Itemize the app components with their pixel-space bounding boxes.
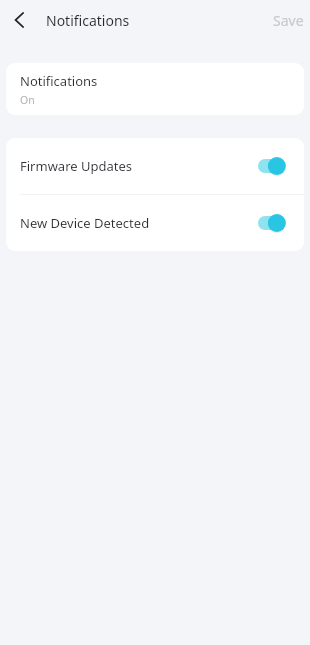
staticText: Notifications — [20, 72, 98, 90]
staticText: On — [20, 93, 35, 107]
button[interactable]: Toggle on — [258, 214, 284, 232]
button[interactable]: Notifications — [6, 63, 304, 115]
staticText: Firmware Updates — [20, 157, 132, 175]
button[interactable]: New Device Detected — [6, 195, 304, 251]
staticText: Notifications — [46, 11, 130, 30]
button[interactable]: Toggle on — [258, 157, 284, 175]
staticText: Save — [273, 11, 304, 30]
button[interactable]: Save — [267, 5, 310, 36]
button[interactable]: Firmware Updates — [6, 138, 304, 194]
button[interactable]: Back — [4, 4, 36, 36]
staticText: New Device Detected — [20, 214, 150, 232]
